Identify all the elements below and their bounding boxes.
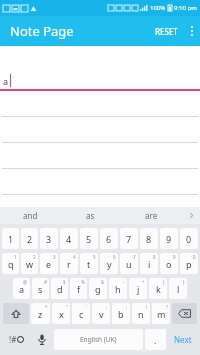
- staticText: 3: [53, 254, 56, 260]
- button[interactable]: Symbols: [3, 328, 29, 350]
- button[interactable]: 1: [2, 228, 19, 249]
- button[interactable]: 5: [80, 228, 98, 249]
- button[interactable]: 4: [60, 253, 78, 274]
- staticText: u: [126, 258, 132, 270]
- staticText: y: [107, 258, 112, 270]
- button[interactable]: !: [132, 303, 150, 324]
- button[interactable]: 1: [2, 253, 19, 274]
- button[interactable]: 6: [100, 228, 118, 249]
- button[interactable]: +: [129, 278, 147, 299]
- button[interactable]: (: [149, 278, 167, 299]
- staticText: 2: [27, 233, 33, 245]
- button[interactable]: ': [72, 303, 90, 324]
- staticText: 0: [186, 233, 192, 245]
- button[interactable]: 8: [140, 253, 158, 274]
- staticText: v: [99, 308, 104, 320]
- staticText: +: [142, 279, 145, 285]
- button[interactable]: ;: [112, 303, 130, 324]
- staticText: p: [186, 258, 192, 270]
- staticText: r: [67, 258, 71, 270]
- staticText: s: [38, 283, 43, 295]
- button[interactable]: ?: [152, 303, 170, 324]
- button[interactable]: 9: [160, 228, 178, 249]
- button[interactable]: 8: [140, 228, 158, 249]
- button[interactable]: ": [52, 303, 70, 324]
- staticText: 1: [8, 233, 14, 245]
- staticText: ': [86, 304, 88, 310]
- staticText: @: [23, 279, 28, 285]
- button[interactable]: &: [89, 278, 107, 299]
- staticText: 4: [73, 254, 76, 260]
- staticText: e: [46, 258, 52, 270]
- button[interactable]: Shift: [3, 303, 29, 324]
- staticText: h: [115, 283, 121, 295]
- button[interactable]: *: [31, 303, 50, 324]
- button[interactable]: 2: [21, 253, 38, 274]
- button[interactable]: ): [169, 278, 187, 299]
- button[interactable]: 9: [160, 253, 178, 274]
- button[interactable]: as: [60, 207, 121, 224]
- staticText: ;: [126, 304, 128, 310]
- staticText: w: [26, 258, 34, 270]
- button[interactable]: @: [13, 278, 30, 299]
- staticText: %: [81, 279, 85, 285]
- button[interactable]: .: [145, 329, 166, 350]
- button[interactable]: $: [51, 278, 68, 299]
- button[interactable]: 7: [120, 253, 138, 274]
- staticText: as: [86, 210, 95, 221]
- staticText: a: [3, 75, 9, 87]
- button[interactable]: Next: [168, 329, 197, 350]
- staticText: 9: [173, 254, 176, 260]
- button[interactable]: More suggestions: [182, 207, 200, 224]
- staticText: f: [77, 283, 81, 295]
- button[interactable]: 2: [21, 228, 38, 249]
- staticText: l: [177, 283, 180, 295]
- staticText: Next: [174, 334, 192, 345]
- staticText: t: [87, 258, 91, 270]
- staticText: and: [23, 210, 38, 221]
- button[interactable]: 5: [80, 253, 98, 274]
- staticText: *: [45, 304, 48, 310]
- button[interactable]: are: [121, 207, 182, 224]
- staticText: 5: [86, 233, 92, 245]
- button[interactable]: 3: [40, 253, 58, 274]
- staticText: d: [57, 283, 63, 295]
- button[interactable]: English (UK): [54, 329, 143, 350]
- button[interactable]: RESET: [149, 20, 184, 43]
- button[interactable]: 6: [100, 253, 118, 274]
- staticText: 2: [33, 254, 36, 260]
- staticText: 5: [93, 254, 96, 260]
- staticText: !: [146, 304, 148, 310]
- button[interactable]: 0: [180, 253, 198, 274]
- button[interactable]: 3: [40, 228, 58, 249]
- staticText: ?: [166, 304, 168, 310]
- staticText: 100%: [150, 4, 166, 12]
- staticText: #: [44, 279, 47, 285]
- staticText: x: [59, 308, 64, 320]
- staticText: m: [157, 308, 166, 320]
- staticText: 7: [133, 254, 136, 260]
- button[interactable]: 4: [60, 228, 78, 249]
- staticText: 8: [146, 233, 152, 245]
- staticText: -: [123, 279, 125, 285]
- button[interactable]: More options: [184, 19, 200, 43]
- button[interactable]: Voice input: [31, 328, 52, 350]
- staticText: z: [38, 308, 43, 320]
- button[interactable]: %: [70, 278, 87, 299]
- staticText: :: [106, 304, 108, 310]
- staticText: RESET: [155, 26, 178, 37]
- button[interactable]: and: [0, 207, 60, 224]
- staticText: q: [8, 258, 14, 270]
- staticText: 6: [106, 233, 112, 245]
- button[interactable]: 7: [120, 228, 138, 249]
- button[interactable]: :: [92, 303, 110, 324]
- button[interactable]: 0: [180, 228, 198, 249]
- staticText: g: [95, 283, 101, 295]
- button[interactable]: #: [32, 278, 49, 299]
- button[interactable]: Backspace: [172, 303, 197, 324]
- staticText: are: [145, 210, 158, 221]
- staticText: a: [19, 283, 25, 295]
- staticText: Note Page: [10, 22, 74, 40]
- button[interactable]: -: [109, 278, 127, 299]
- staticText: (: [163, 279, 165, 285]
